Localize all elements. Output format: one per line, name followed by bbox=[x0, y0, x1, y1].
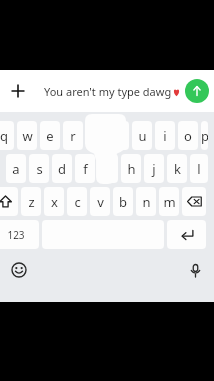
staticText: h bbox=[127, 160, 136, 178]
staticText: n bbox=[142, 193, 151, 211]
button[interactable]: Backspace bbox=[182, 187, 206, 216]
staticText: You aren't my type dawg bbox=[44, 84, 172, 99]
button[interactable]: n bbox=[136, 187, 156, 216]
staticText: u bbox=[138, 127, 147, 145]
staticText: m bbox=[163, 193, 176, 211]
button[interactable]: u bbox=[132, 121, 152, 150]
staticText: r bbox=[70, 127, 76, 145]
button[interactable]: Send bbox=[185, 79, 209, 103]
staticText: l bbox=[197, 160, 201, 178]
staticText: s bbox=[36, 160, 43, 178]
staticText: v bbox=[97, 193, 104, 211]
button[interactable]: p bbox=[201, 121, 208, 150]
button[interactable]: Enter bbox=[167, 220, 206, 249]
button[interactable]: o bbox=[178, 121, 198, 150]
button[interactable]: Emoji bbox=[6, 257, 32, 283]
staticText: f bbox=[83, 160, 88, 178]
staticText: d bbox=[58, 160, 66, 178]
button[interactable]: d bbox=[52, 154, 72, 183]
button[interactable]: i bbox=[155, 121, 175, 150]
button[interactable]: l bbox=[190, 154, 208, 183]
button[interactable]: j bbox=[144, 154, 164, 183]
button[interactable]: b bbox=[113, 187, 133, 216]
button[interactable]: e bbox=[40, 121, 60, 150]
button[interactable]: k bbox=[167, 154, 187, 183]
staticText: i bbox=[163, 127, 167, 145]
button[interactable]: m bbox=[159, 187, 179, 216]
button[interactable]: Add attachment bbox=[4, 77, 32, 105]
button[interactable]: z bbox=[21, 187, 41, 216]
staticText: w bbox=[22, 127, 33, 145]
staticText: e bbox=[46, 127, 54, 145]
staticText: k bbox=[174, 160, 181, 178]
staticText: a bbox=[12, 160, 20, 178]
button[interactable]: 123 bbox=[0, 220, 39, 249]
button[interactable]: Voice input bbox=[182, 257, 208, 283]
staticText: j bbox=[152, 160, 156, 178]
staticText: z bbox=[28, 193, 35, 211]
button[interactable]: w bbox=[17, 121, 37, 150]
button[interactable]: a bbox=[6, 154, 26, 183]
button[interactable]: x bbox=[44, 187, 64, 216]
staticText: 123 bbox=[7, 228, 25, 242]
button[interactable]: s bbox=[29, 154, 49, 183]
button[interactable]: Shift bbox=[0, 187, 18, 216]
staticText: x bbox=[51, 193, 58, 211]
button[interactable]: v bbox=[90, 187, 110, 216]
staticText: b bbox=[119, 193, 127, 211]
staticText: q bbox=[0, 127, 8, 145]
button[interactable]: You aren't my type dawg bbox=[36, 78, 180, 104]
staticText: o bbox=[184, 127, 192, 145]
button[interactable]: c bbox=[67, 187, 87, 216]
button[interactable]: f bbox=[75, 154, 95, 183]
button[interactable]: h bbox=[121, 154, 141, 183]
button[interactable]: q bbox=[0, 121, 14, 150]
button[interactable]: r bbox=[63, 121, 83, 150]
staticText: p bbox=[201, 127, 208, 145]
staticText: c bbox=[74, 193, 81, 211]
